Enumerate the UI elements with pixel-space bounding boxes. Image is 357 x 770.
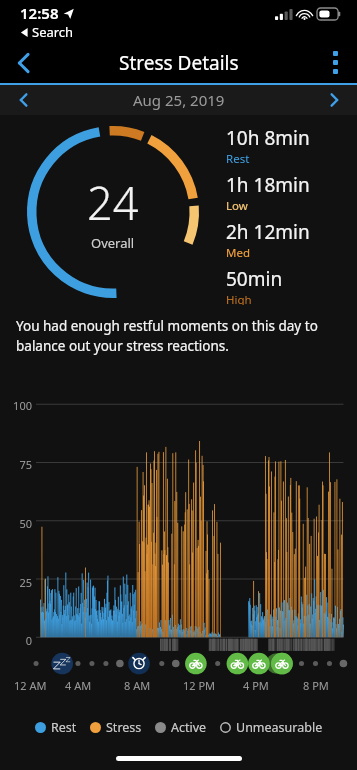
staticText: Low <box>226 198 248 214</box>
staticText: 50 <box>4 516 32 531</box>
staticText: 4 AM <box>65 678 92 693</box>
staticText: 8 PM <box>303 678 329 693</box>
staticText: 12:58 <box>20 3 59 23</box>
staticText: You had enough restful moments on this d… <box>16 317 341 355</box>
button[interactable]: Rest <box>35 719 77 736</box>
staticText: 1h 18min <box>226 172 310 198</box>
staticText: 10h 8min <box>226 125 310 151</box>
staticText: Search <box>32 23 74 41</box>
staticText: Unmeasurable <box>236 719 323 736</box>
staticText: 12 AM <box>14 678 47 693</box>
staticText: 50min <box>226 266 283 292</box>
staticText: Rest <box>51 719 77 736</box>
button[interactable]: Next day <box>317 85 351 115</box>
staticText: 0 <box>4 633 32 648</box>
staticText: Rest <box>226 151 250 167</box>
staticText: 75 <box>4 457 32 472</box>
button[interactable]: More options <box>313 42 357 83</box>
staticText: 12 PM <box>183 678 216 693</box>
staticText: Overall <box>91 234 135 252</box>
staticText: Med <box>226 245 250 261</box>
button[interactable]: Unmeasurable <box>220 719 323 736</box>
staticText: Stress <box>106 719 142 736</box>
staticText: High <box>226 292 252 305</box>
staticText: 8 AM <box>124 678 151 693</box>
button[interactable]: Previous day <box>6 85 40 115</box>
staticText: Active <box>171 719 207 736</box>
button[interactable]: Stress <box>90 719 142 736</box>
staticText: 2h 12min <box>226 219 310 245</box>
button[interactable]: Active <box>155 719 207 736</box>
staticText: 4 PM <box>243 678 269 693</box>
staticText: 24 <box>87 172 139 233</box>
staticText: Stress Details <box>119 50 239 76</box>
staticText: 25 <box>4 575 32 590</box>
staticText: Aug 25, 2019 <box>133 90 225 110</box>
staticText: 100 <box>4 398 32 413</box>
button[interactable]: Back <box>0 42 46 83</box>
